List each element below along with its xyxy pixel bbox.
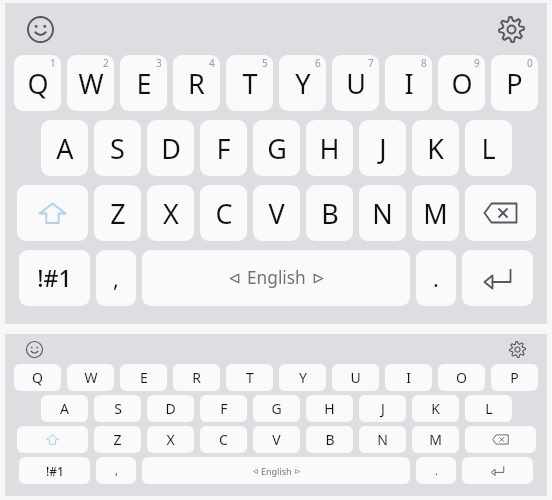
button[interactable]: B xyxy=(306,426,353,453)
staticText: L xyxy=(485,399,493,418)
button[interactable]: D xyxy=(147,395,194,422)
staticText: J xyxy=(379,130,387,167)
staticText: 7 xyxy=(368,56,374,70)
button[interactable]: V xyxy=(253,426,300,453)
button[interactable]: H xyxy=(306,395,353,422)
button[interactable]: R xyxy=(173,55,220,111)
button[interactable]: !#1 xyxy=(19,457,90,484)
staticText: English xyxy=(247,266,306,290)
button[interactable]: G xyxy=(253,395,300,422)
button[interactable]: Settings xyxy=(507,339,528,360)
button[interactable]: . xyxy=(416,457,456,484)
button[interactable]: A xyxy=(41,120,88,176)
button[interactable]: T xyxy=(226,364,273,391)
staticText: C xyxy=(215,195,233,232)
staticText: E xyxy=(136,65,152,102)
button[interactable]: G xyxy=(253,120,300,176)
button[interactable]: Enter xyxy=(462,250,533,306)
staticText: W xyxy=(84,368,98,387)
button[interactable]: Space, English xyxy=(142,457,410,484)
staticText: H xyxy=(324,399,335,418)
button[interactable]: I xyxy=(385,55,432,111)
button[interactable]: J xyxy=(359,120,406,176)
button[interactable]: K xyxy=(412,395,459,422)
button[interactable]: Y xyxy=(279,364,326,391)
staticText: T xyxy=(246,368,254,387)
button[interactable]: Settings xyxy=(495,13,528,46)
button[interactable]: L xyxy=(465,120,512,176)
staticText: G xyxy=(271,399,282,418)
staticText: I xyxy=(404,65,414,102)
button[interactable]: W xyxy=(67,55,114,111)
staticText: H xyxy=(319,130,340,167)
button[interactable]: C xyxy=(200,426,247,453)
button[interactable]: Z xyxy=(94,426,141,453)
staticText: V xyxy=(272,430,281,449)
button[interactable]: D xyxy=(147,120,194,176)
button[interactable]: Shift xyxy=(17,426,88,453)
button[interactable]: !#1 xyxy=(19,250,90,306)
button[interactable]: X xyxy=(147,426,194,453)
button[interactable]: N xyxy=(359,185,406,241)
staticText: K xyxy=(427,130,444,167)
button[interactable]: Q xyxy=(14,55,61,111)
button[interactable]: R xyxy=(173,364,220,391)
button[interactable]: Y xyxy=(279,55,326,111)
staticText: Z xyxy=(113,430,122,449)
button[interactable]: T xyxy=(226,55,273,111)
button[interactable]: U xyxy=(332,364,379,391)
button[interactable]: N xyxy=(359,426,406,453)
button[interactable]: P xyxy=(491,364,538,391)
staticText: O xyxy=(451,65,473,102)
button[interactable]: K xyxy=(412,120,459,176)
button[interactable]: Q xyxy=(14,364,61,391)
staticText: 4 xyxy=(209,56,215,70)
staticText: 2 xyxy=(103,56,109,70)
button[interactable]: F xyxy=(200,395,247,422)
button[interactable]: E xyxy=(120,55,167,111)
button[interactable]: J xyxy=(359,395,406,422)
button[interactable]: S xyxy=(94,120,141,176)
button[interactable]: Space, English xyxy=(142,250,410,306)
button[interactable]: Backspace xyxy=(465,185,536,241)
button[interactable]: M xyxy=(412,426,459,453)
button[interactable]: A xyxy=(41,395,88,422)
button[interactable]: W xyxy=(67,364,114,391)
button[interactable]: M xyxy=(412,185,459,241)
staticText: P xyxy=(510,368,519,387)
button[interactable]: F xyxy=(200,120,247,176)
button[interactable]: O xyxy=(438,364,485,391)
button[interactable]: S xyxy=(94,395,141,422)
staticText: R xyxy=(188,65,205,102)
staticText: V xyxy=(268,195,285,232)
button[interactable]: , xyxy=(96,457,136,484)
button[interactable]: . xyxy=(416,250,456,306)
staticText: X xyxy=(166,430,175,449)
button[interactable]: L xyxy=(465,395,512,422)
button[interactable]: H xyxy=(306,120,353,176)
staticText: S xyxy=(114,399,122,418)
button[interactable]: Backspace xyxy=(465,426,536,453)
button[interactable]: Emoji xyxy=(24,13,57,46)
button[interactable]: C xyxy=(200,185,247,241)
button[interactable]: Z xyxy=(94,185,141,241)
button[interactable]: O xyxy=(438,55,485,111)
button[interactable]: U xyxy=(332,55,379,111)
button[interactable]: , xyxy=(96,250,136,306)
staticText: . xyxy=(435,463,438,478)
staticText: S xyxy=(110,130,125,167)
button[interactable]: Emoji xyxy=(24,339,45,360)
staticText: U xyxy=(350,368,361,387)
button[interactable]: Shift xyxy=(17,185,88,241)
staticText: !#1 xyxy=(37,262,72,294)
button[interactable]: B xyxy=(306,185,353,241)
staticText: J xyxy=(381,399,385,418)
button[interactable]: I xyxy=(385,364,432,391)
button[interactable]: P xyxy=(491,55,538,111)
button[interactable]: E xyxy=(120,364,167,391)
button[interactable]: V xyxy=(253,185,300,241)
button[interactable]: Enter xyxy=(462,457,533,484)
staticText: D xyxy=(161,130,181,167)
staticText: C xyxy=(219,430,228,449)
button[interactable]: X xyxy=(147,185,194,241)
